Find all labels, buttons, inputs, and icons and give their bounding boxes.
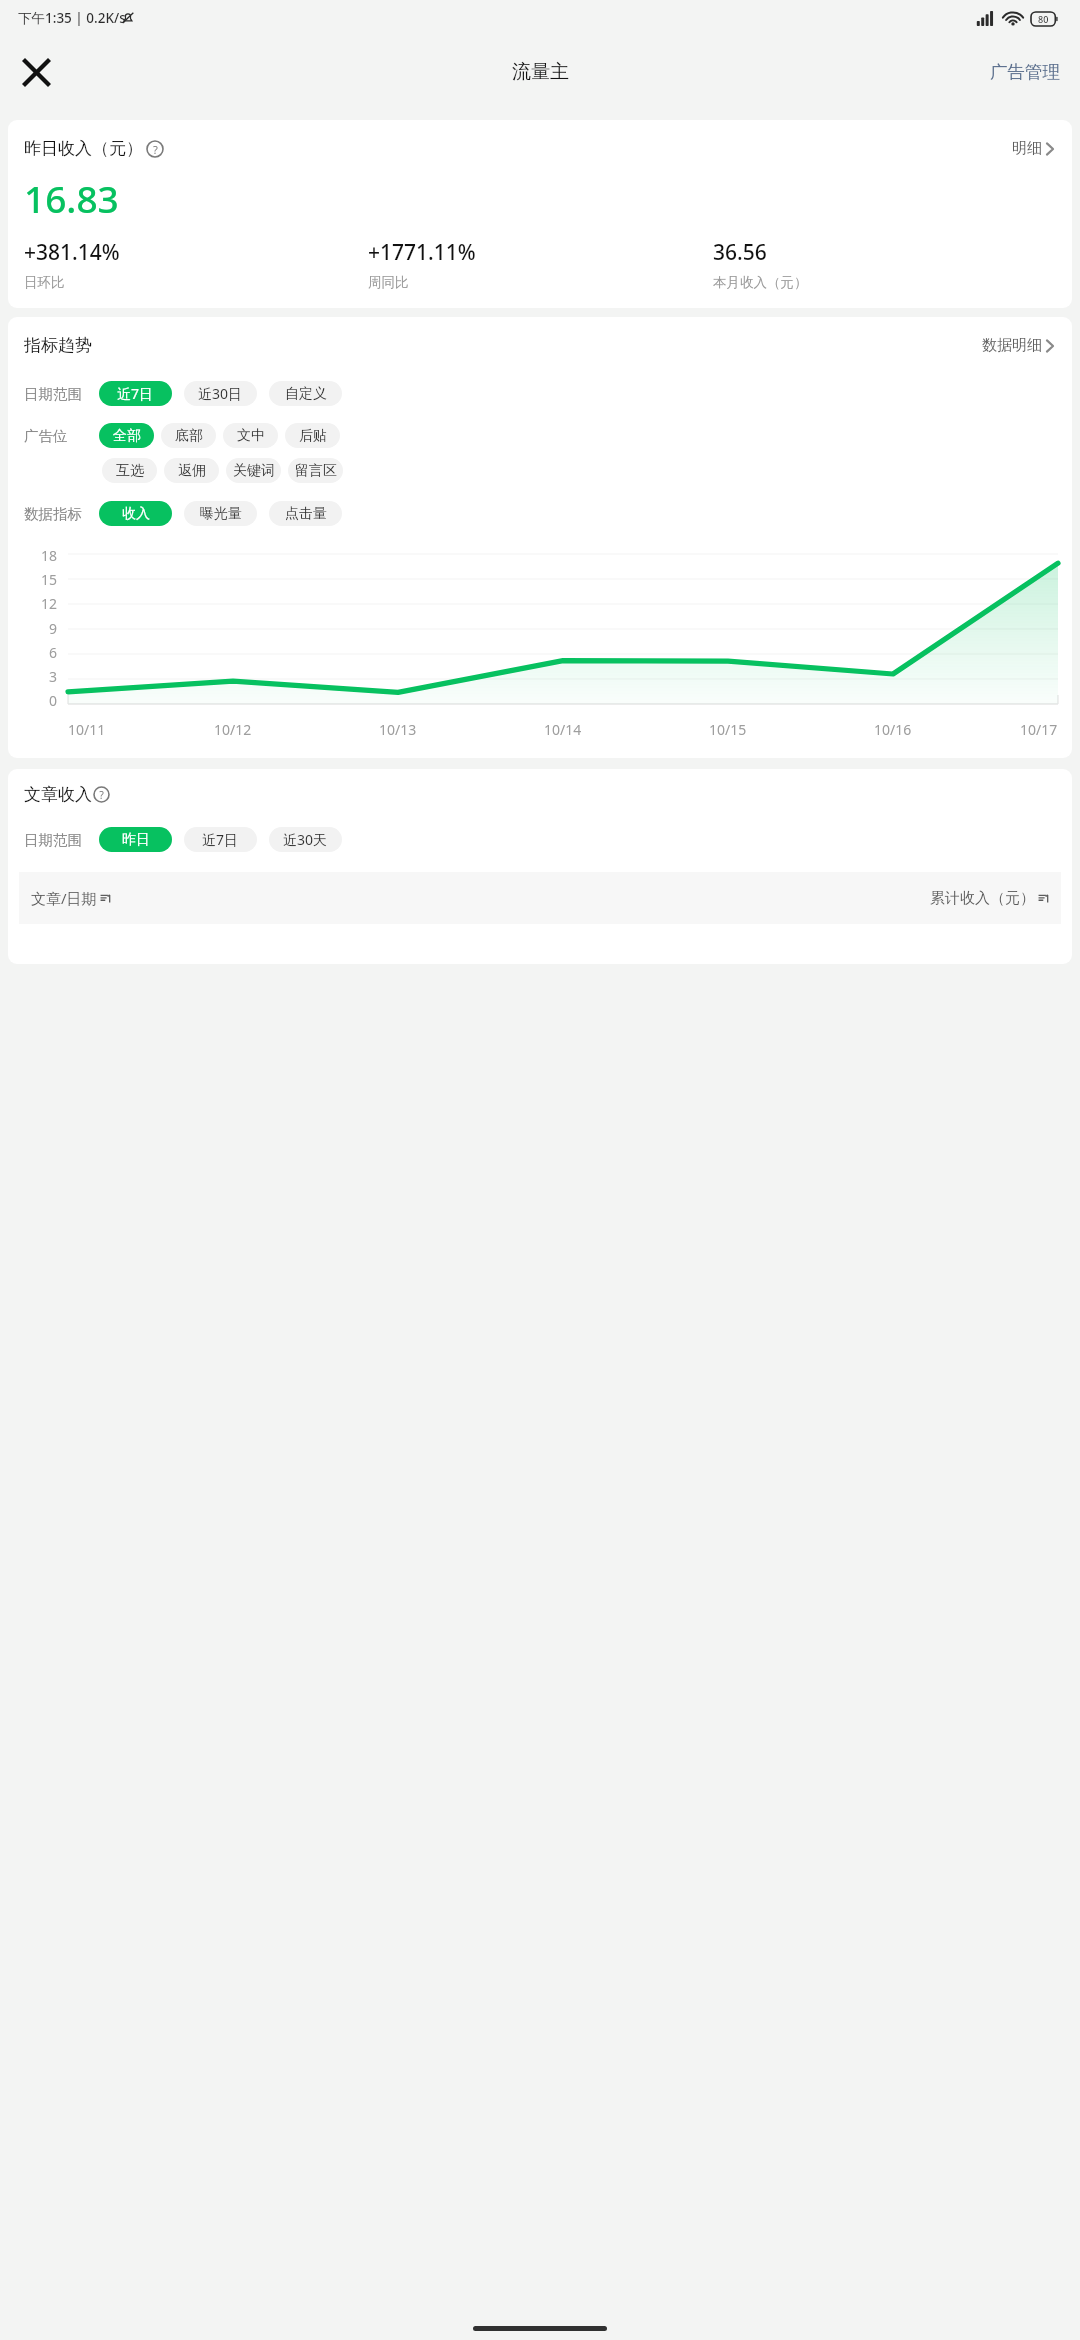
staticText: 昨日收入（元） <box>24 138 143 159</box>
staticText: 0 <box>49 691 58 710</box>
button[interactable]: 曝光量 <box>184 501 257 526</box>
button[interactable]: 近7日 <box>99 381 172 406</box>
staticText: 关键词 <box>233 462 275 480</box>
staticText: 累计收入（元） <box>930 889 1035 908</box>
button[interactable]: 累计收入（元） <box>930 889 1049 908</box>
staticText: 18 <box>41 546 58 565</box>
staticText: 日期范围 <box>24 831 82 849</box>
staticText: 近7日 <box>202 830 239 849</box>
staticText: ? <box>153 142 158 157</box>
staticText: 近30日 <box>198 384 243 403</box>
staticText: 10/15 <box>709 720 747 739</box>
staticText: 指标趋势 <box>24 335 92 356</box>
staticText: 日期范围 <box>24 385 82 403</box>
button[interactable]: 自定义 <box>269 381 342 406</box>
staticText: 文章/日期 <box>31 888 97 908</box>
staticText: 收入 <box>122 505 150 523</box>
button[interactable]: 返佣 <box>164 458 219 483</box>
button[interactable]: 数据明细 <box>978 332 1058 359</box>
staticText: 12 <box>41 594 58 613</box>
button[interactable]: 近7日 <box>184 827 257 852</box>
staticText: 10/14 <box>544 720 582 739</box>
button[interactable]: 近30天 <box>269 827 342 852</box>
button[interactable]: 留言区 <box>288 458 343 483</box>
staticText: 留言区 <box>295 462 337 480</box>
staticText: 下午1:35 | 0.2K/s <box>18 9 126 27</box>
staticText: 自定义 <box>285 385 327 403</box>
staticText: 文章收入 <box>24 784 92 805</box>
staticText: 近30天 <box>283 830 328 849</box>
button[interactable]: 明细 <box>1008 135 1058 162</box>
button[interactable]: 点击量 <box>269 501 342 526</box>
button[interactable]: Help <box>93 786 110 803</box>
button[interactable]: 后贴 <box>285 423 340 448</box>
staticText: 36.56 <box>713 238 767 267</box>
staticText: 10/13 <box>379 720 417 739</box>
staticText: 文中 <box>237 427 265 445</box>
staticText: 本月收入（元） <box>713 274 808 291</box>
button[interactable]: 互选 <box>102 458 157 483</box>
staticText: 广告位 <box>24 427 68 445</box>
staticText: 点击量 <box>285 505 327 523</box>
staticText: 6 <box>49 643 58 662</box>
staticText: +381.14% <box>24 238 120 267</box>
button[interactable]: 文中 <box>223 423 278 448</box>
staticText: 10/11 <box>68 720 106 739</box>
button[interactable]: 文章/日期 <box>31 888 111 908</box>
button[interactable]: 近30日 <box>184 381 257 406</box>
button[interactable]: 昨日 <box>99 827 172 852</box>
staticText: +1771.11% <box>368 238 476 267</box>
staticText: 后贴 <box>299 427 327 445</box>
staticText: 周同比 <box>368 274 409 291</box>
button[interactable]: 底部 <box>161 423 216 448</box>
staticText: 10/17 <box>1020 720 1058 739</box>
staticText: 昨日 <box>122 831 150 849</box>
button[interactable]: 广告管理 <box>984 55 1066 89</box>
staticText: 底部 <box>175 427 203 445</box>
staticText: 广告管理 <box>990 61 1060 83</box>
staticText: 曝光量 <box>200 505 242 523</box>
staticText: 80 <box>1038 13 1049 25</box>
button[interactable]: 全部 <box>99 423 154 448</box>
button[interactable]: 关键词 <box>226 458 281 483</box>
staticText: 3 <box>49 667 58 686</box>
button[interactable]: Close <box>10 46 62 98</box>
staticText: 数据明细 <box>982 336 1042 355</box>
staticText: 互选 <box>116 462 144 480</box>
staticText: 近7日 <box>117 384 154 403</box>
staticText: 日环比 <box>24 274 65 291</box>
staticText: 16.83 <box>24 173 119 223</box>
staticText: 15 <box>41 570 58 589</box>
staticText: 返佣 <box>178 462 206 480</box>
button[interactable]: Help <box>146 140 164 158</box>
staticText: 全部 <box>113 427 141 445</box>
staticText: 9 <box>49 619 58 638</box>
staticText: 数据指标 <box>24 505 82 523</box>
staticText: 10/16 <box>874 720 912 739</box>
staticText: 流量主 <box>512 60 569 84</box>
button[interactable]: 收入 <box>99 501 172 526</box>
staticText: ? <box>99 788 104 802</box>
staticText: 10/12 <box>214 720 252 739</box>
staticText: 明细 <box>1012 139 1042 158</box>
